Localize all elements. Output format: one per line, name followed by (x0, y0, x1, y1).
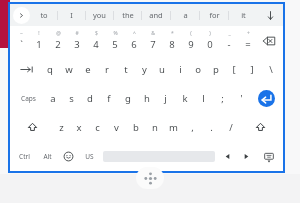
staticText: 2 (55, 38, 61, 51)
button[interactable]: % (105, 26, 124, 55)
staticText: ~ (20, 30, 23, 37)
button[interactable]: , (183, 113, 202, 142)
button[interactable]: y (135, 55, 153, 84)
button[interactable]: ( (181, 26, 200, 55)
button[interactable]: l (194, 84, 213, 113)
staticText: i (179, 63, 182, 76)
button[interactable]: it (229, 4, 257, 26)
button[interactable]: I (58, 4, 85, 26)
button[interactable]: b (126, 113, 145, 142)
button[interactable]: Enter (251, 84, 281, 113)
staticText: p (213, 63, 219, 76)
button[interactable]: . (202, 113, 221, 142)
button[interactable]: m (164, 113, 183, 142)
button[interactable]: ) (200, 26, 219, 55)
button[interactable]: # (67, 26, 86, 55)
staticText: c (95, 121, 100, 134)
button[interactable]: Move keyboard (136, 167, 164, 189)
button[interactable]: you (86, 4, 113, 26)
button[interactable]: Tab (12, 55, 40, 84)
button[interactable]: f (99, 84, 118, 113)
button[interactable]: Hide keyboard (256, 142, 281, 171)
button[interactable]: z (52, 113, 70, 142)
staticText: US (85, 152, 94, 161)
button[interactable]: g (118, 84, 137, 113)
button[interactable]: c (88, 113, 107, 142)
button[interactable]: Backspace (257, 26, 281, 55)
button[interactable]: h (137, 84, 156, 113)
staticText: ` (20, 38, 23, 51)
button[interactable]: r (97, 55, 116, 84)
staticText: 9 (188, 38, 194, 51)
button[interactable]: k (175, 84, 194, 113)
button[interactable]: US (79, 142, 100, 171)
button[interactable]: ' (232, 84, 251, 113)
button[interactable]: Shift (12, 113, 52, 142)
button[interactable]: Emoji (58, 142, 79, 171)
staticText: 1 (36, 38, 42, 51)
staticText: [ (232, 63, 236, 76)
other: Move left (221, 150, 234, 163)
button[interactable]: Expand suggestions (13, 7, 30, 24)
button[interactable]: q (40, 55, 59, 84)
button[interactable]: Hide suggestions (257, 4, 283, 26)
other: Backspace (261, 33, 277, 49)
staticText: the (122, 10, 134, 20)
button[interactable]: * (162, 26, 181, 55)
button[interactable]: / (221, 113, 240, 142)
button[interactable]: ~ (12, 26, 30, 55)
staticText: * (171, 30, 174, 37)
staticText: it (241, 10, 246, 20)
button[interactable]: x (70, 113, 88, 142)
button[interactable]: a (171, 4, 199, 26)
staticText: \ (269, 63, 273, 76)
button[interactable]: n (145, 113, 164, 142)
staticText: z (59, 121, 64, 134)
staticText: k (182, 92, 188, 105)
button[interactable]: u (153, 55, 171, 84)
staticText: Caps (21, 94, 36, 103)
button[interactable]: Alt (37, 142, 58, 171)
staticText: y (142, 63, 147, 76)
button[interactable]: o (189, 55, 207, 84)
button[interactable]: Shift (240, 113, 281, 142)
button[interactable]: ! (30, 26, 48, 55)
button[interactable]: $ (86, 26, 105, 55)
staticText: o (195, 63, 201, 76)
button[interactable]: s (62, 84, 80, 113)
staticText: 5 (112, 38, 118, 51)
button[interactable]: for (200, 4, 228, 26)
button[interactable]: to (30, 4, 57, 26)
button[interactable]: j (156, 84, 175, 113)
button[interactable]: ; (213, 84, 232, 113)
button[interactable]: Ctrl (12, 142, 37, 171)
button[interactable]: [ (225, 55, 243, 84)
button[interactable]: & (143, 26, 162, 55)
button[interactable]: t (116, 55, 135, 84)
button[interactable]: @ (48, 26, 67, 55)
staticText: 8 (169, 38, 175, 51)
button[interactable]: \ (261, 55, 281, 84)
button[interactable]: d (80, 84, 99, 113)
button[interactable]: Move right (237, 142, 256, 171)
button[interactable]: p (207, 55, 225, 84)
button[interactable]: + (238, 26, 257, 55)
staticText: for (209, 10, 220, 20)
button[interactable]: Caps (12, 84, 44, 113)
staticText: Ctrl (19, 152, 30, 161)
button[interactable]: Enter (258, 90, 275, 107)
staticText: g (125, 92, 131, 105)
button[interactable]: ^ (124, 26, 143, 55)
button[interactable]: v (107, 113, 126, 142)
button[interactable]: e (78, 55, 97, 84)
staticText: a (183, 10, 188, 20)
button[interactable]: and (142, 4, 170, 26)
button[interactable]: ] (243, 55, 261, 84)
button[interactable]: a (44, 84, 62, 113)
button[interactable]: _ (219, 26, 238, 55)
button[interactable]: i (171, 55, 189, 84)
button[interactable]: the (114, 4, 141, 26)
button[interactable]: w (59, 55, 78, 84)
button[interactable]: Move left (218, 142, 237, 171)
